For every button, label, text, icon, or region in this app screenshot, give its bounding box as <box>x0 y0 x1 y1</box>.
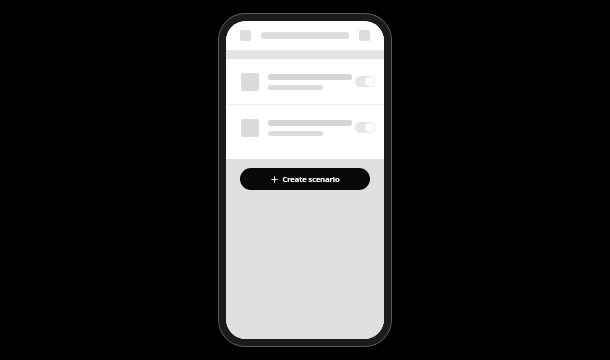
button[interactable]: Toggle scenario <box>226 105 384 150</box>
button[interactable]: More options <box>359 30 370 41</box>
button[interactable]: Toggle scenario <box>355 76 375 87</box>
button[interactable]: Create scenario <box>240 168 370 190</box>
button[interactable]: Toggle scenario <box>226 59 384 104</box>
staticText: Create scenario <box>282 174 340 184</box>
button[interactable]: Navigate up <box>240 30 251 41</box>
button[interactable]: Toggle scenario <box>355 122 375 133</box>
